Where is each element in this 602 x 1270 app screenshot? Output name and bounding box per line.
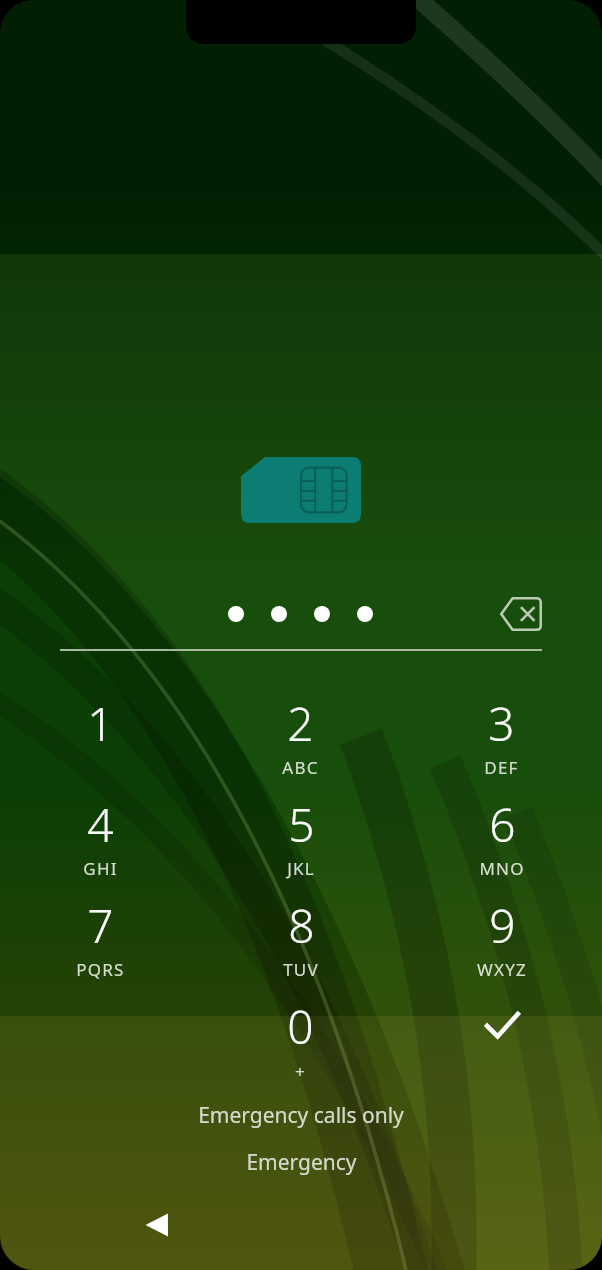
- staticText: 9: [489, 894, 516, 957]
- button[interactable]: Emergency calls only: [184, 1098, 418, 1133]
- button[interactable]: 4: [0, 779, 200, 880]
- button[interactable]: Backspace: [489, 596, 553, 632]
- staticText: Emergency calls only: [198, 1101, 404, 1130]
- staticText: 5: [288, 793, 315, 856]
- button[interactable]: 6: [401, 779, 602, 880]
- staticText: 3: [488, 692, 515, 755]
- staticText: Emergency: [246, 1148, 357, 1177]
- button[interactable]: 0: [200, 981, 401, 1082]
- staticText: PQRS: [76, 958, 125, 981]
- staticText: JKL: [287, 857, 315, 880]
- button[interactable]: 8: [200, 880, 401, 981]
- button[interactable]: Back: [128, 1196, 186, 1254]
- staticText: 0: [287, 995, 314, 1058]
- staticText: 6: [489, 793, 516, 856]
- button[interactable]: 3: [401, 678, 602, 779]
- staticText: +: [295, 1060, 306, 1082]
- button[interactable]: Emergency: [232, 1145, 371, 1180]
- button[interactable]: 9: [401, 880, 602, 981]
- button[interactable]: 2: [200, 678, 401, 779]
- staticText: MNO: [479, 857, 525, 880]
- button[interactable]: 7: [0, 880, 200, 981]
- button[interactable]: Confirm PIN: [401, 981, 602, 1082]
- staticText: DEF: [484, 756, 519, 779]
- staticText: GHI: [83, 857, 118, 880]
- staticText: WXYZ: [477, 958, 527, 981]
- staticText: 1: [87, 692, 114, 755]
- button[interactable]: 1: [0, 678, 200, 779]
- staticText: 8: [288, 894, 315, 957]
- staticText: TUV: [283, 958, 319, 981]
- staticText: ABC: [282, 756, 319, 779]
- staticText: 7: [87, 894, 114, 957]
- staticText: 4: [87, 793, 114, 856]
- staticText: 2: [287, 692, 314, 755]
- button[interactable]: 5: [200, 779, 401, 880]
